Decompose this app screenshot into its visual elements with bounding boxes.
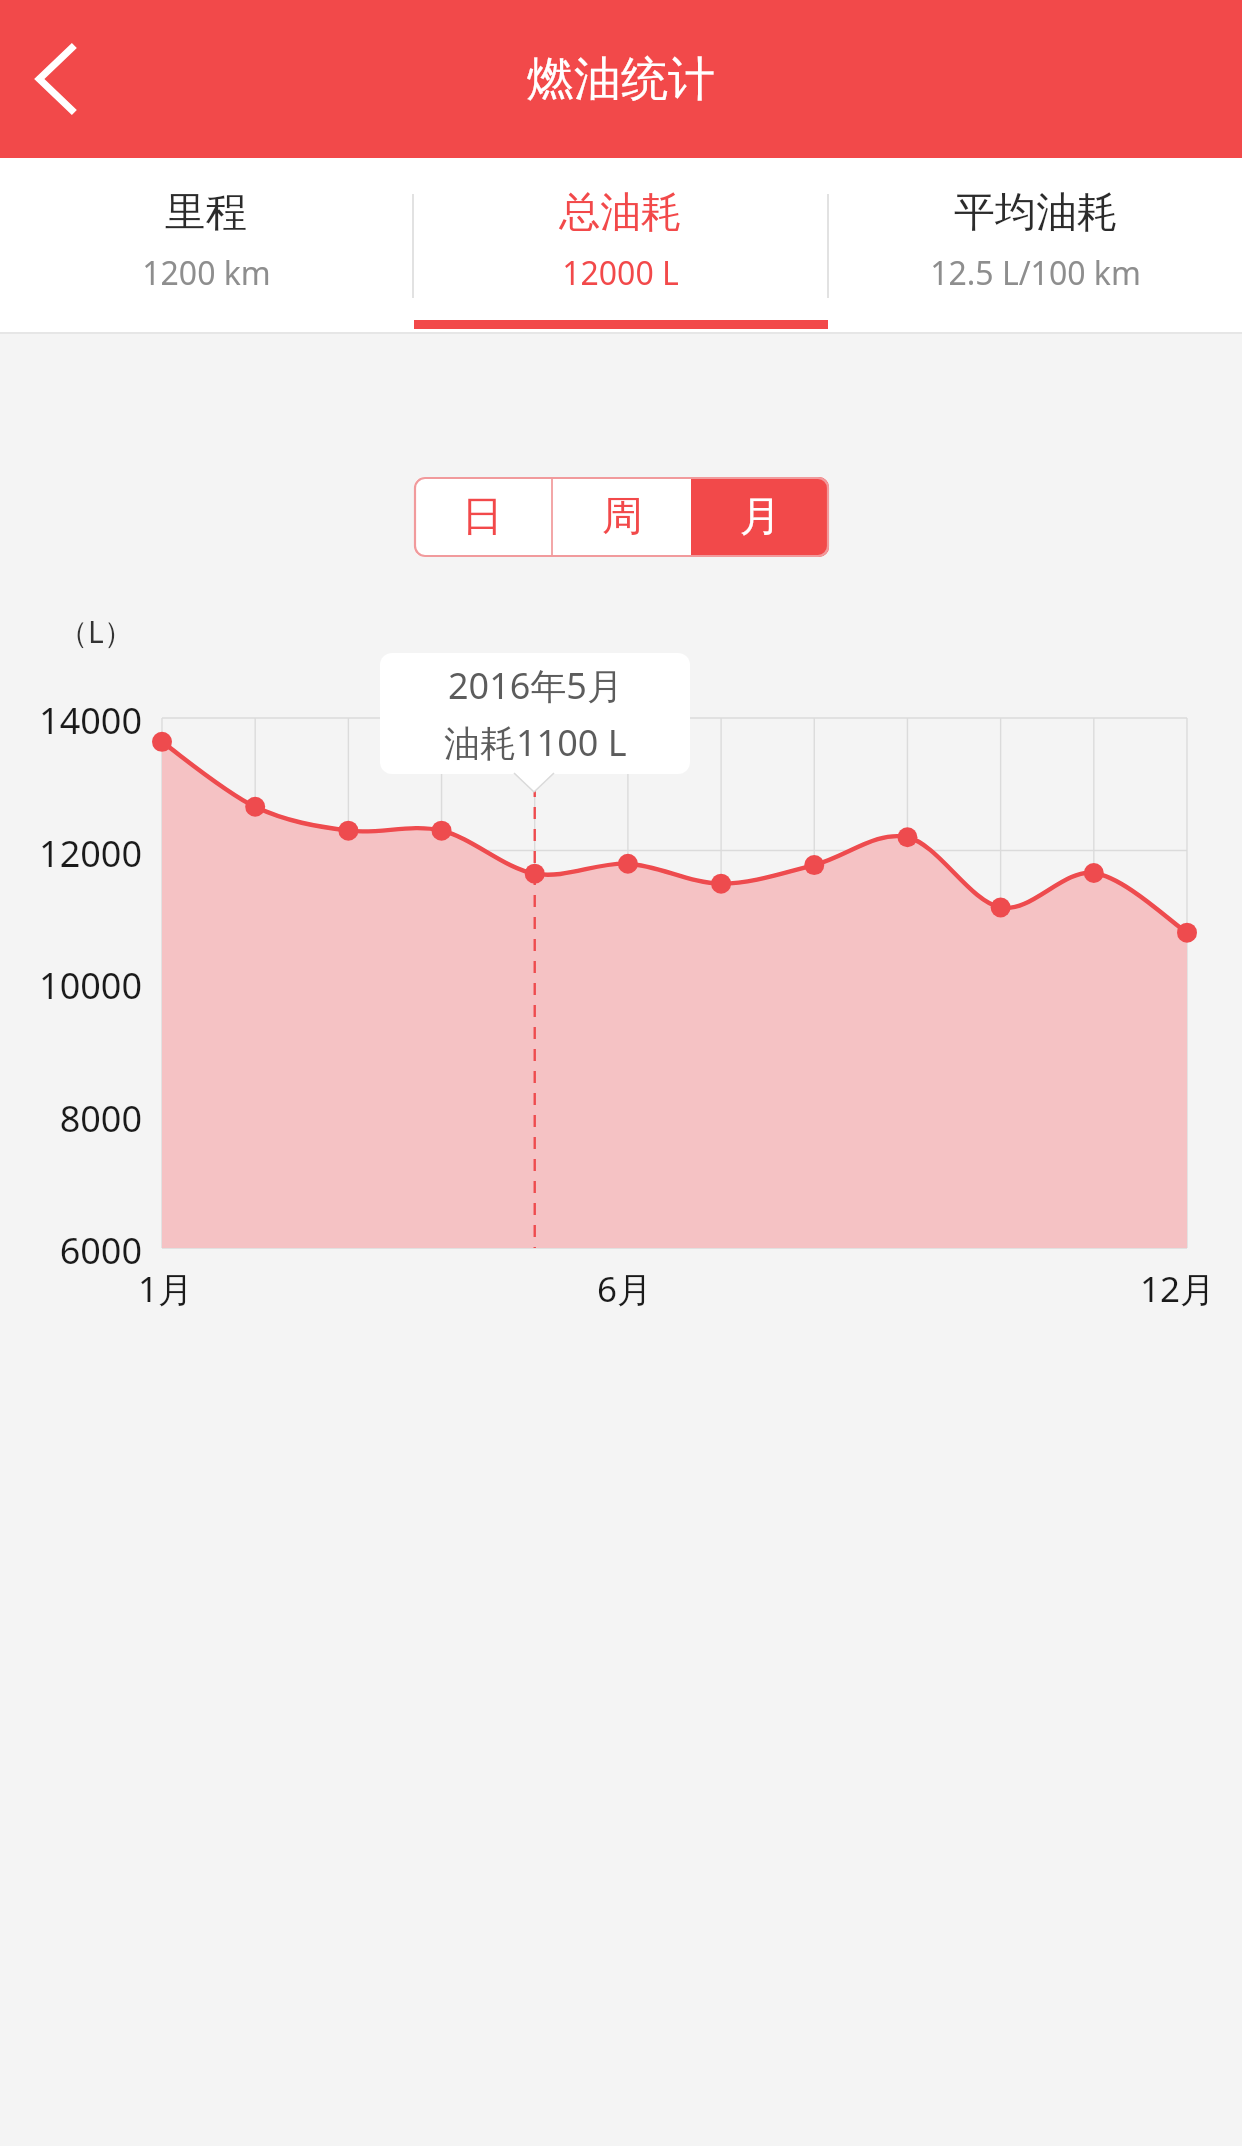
button[interactable]: 平均油耗	[829, 158, 1242, 334]
staticText: 平均油耗	[954, 187, 1118, 239]
staticText: 12月	[1140, 1265, 1216, 1313]
staticText: 10000	[0, 961, 142, 1010]
staticText: 12000 L	[562, 251, 679, 295]
staticText: 月	[740, 491, 781, 543]
button[interactable]: Back	[0, 10, 138, 148]
staticText: 总油耗	[559, 187, 682, 239]
staticText: 日	[462, 491, 503, 543]
button[interactable]: 里程	[0, 158, 412, 334]
staticText: 燃油统计	[527, 50, 715, 109]
staticText: 12000	[0, 829, 142, 878]
button[interactable]: 2016年5月	[380, 653, 690, 774]
staticText: 12.5 L/100 km	[930, 251, 1141, 295]
button[interactable]: 月	[691, 477, 829, 557]
staticText: 6月	[597, 1265, 653, 1313]
staticText: 周	[602, 491, 643, 543]
staticText: 6000	[0, 1226, 142, 1275]
staticText: 里程	[165, 187, 247, 239]
staticText: 1200 km	[142, 251, 271, 295]
staticText: 2016年5月	[448, 661, 623, 710]
staticText: 14000	[0, 696, 142, 745]
staticText: 1月	[138, 1265, 194, 1313]
staticText: 8000	[0, 1094, 142, 1143]
button[interactable]: 总油耗	[414, 158, 827, 334]
staticText: 油耗1100 L	[444, 718, 627, 767]
staticText: （L）	[58, 611, 134, 652]
button[interactable]: 周	[553, 477, 691, 557]
button[interactable]: 日	[414, 477, 551, 557]
